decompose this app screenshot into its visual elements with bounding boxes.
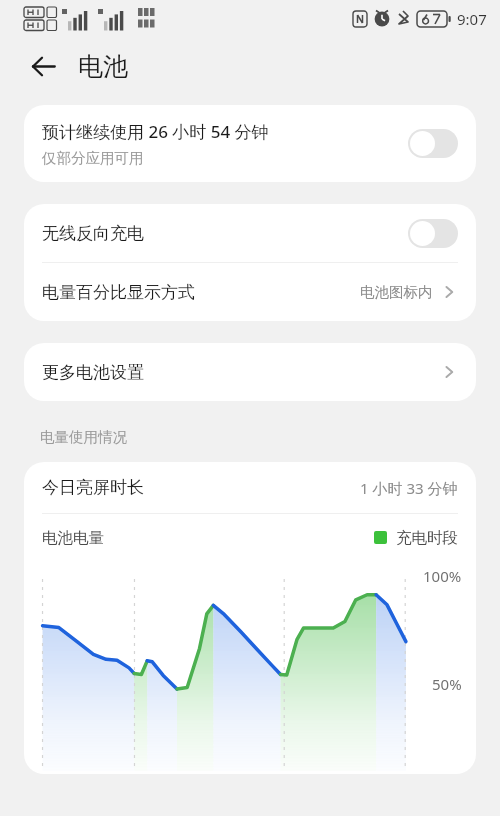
staticText: 电池图标内 bbox=[360, 283, 433, 301]
staticText: 100% bbox=[423, 566, 462, 586]
button[interactable]: 预计继续使用 26 小时 54 分钟 bbox=[24, 105, 476, 182]
button[interactable]: 电量百分比显示方式 bbox=[24, 263, 476, 321]
staticText: 50% bbox=[432, 674, 462, 694]
button[interactable]: Toggle bbox=[408, 129, 458, 158]
staticText: 预计继续使用 26 小时 54 分钟 bbox=[42, 120, 269, 143]
staticText: 1 小时 33 分钟 bbox=[360, 478, 458, 498]
staticText: 充电时段 bbox=[396, 528, 458, 548]
staticText: 电池 bbox=[78, 51, 128, 82]
button[interactable]: 今日亮屏时长 bbox=[24, 462, 476, 513]
staticText: 电池电量 bbox=[42, 528, 374, 548]
button[interactable]: Back bbox=[24, 47, 62, 85]
staticText: 电量百分比显示方式 bbox=[42, 282, 360, 303]
button[interactable]: Toggle bbox=[408, 219, 458, 248]
staticText: 更多电池设置 bbox=[42, 362, 440, 383]
staticText: 仅部分应用可用 bbox=[42, 149, 144, 167]
button[interactable]: 更多电池设置 bbox=[24, 343, 476, 401]
staticText: 9:07 bbox=[457, 9, 487, 29]
staticText: 无线反向充电 bbox=[42, 223, 408, 244]
staticText: 电量使用情况 bbox=[40, 428, 127, 446]
button[interactable]: 无线反向充电 bbox=[24, 204, 476, 262]
staticText: 今日亮屏时长 bbox=[42, 477, 360, 498]
